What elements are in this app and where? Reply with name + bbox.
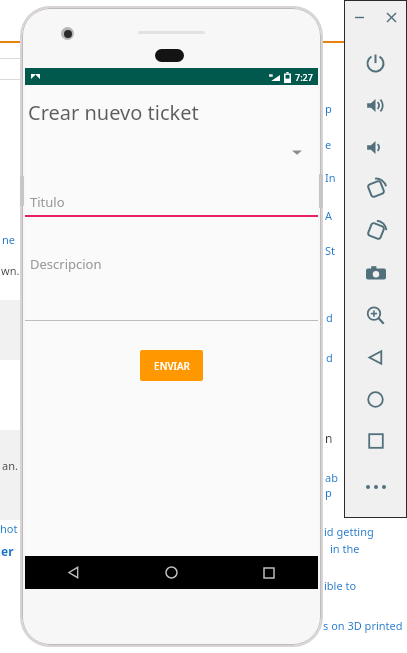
button[interactable]: Volume up (344, 84, 407, 126)
button[interactable]: Rotate left (344, 168, 407, 210)
button[interactable]: Volume down (344, 126, 407, 168)
staticText: d (326, 310, 333, 325)
staticText: an. (2, 458, 18, 473)
staticText: d (326, 350, 333, 365)
staticText: ible to (324, 578, 357, 593)
button[interactable]: Power (344, 42, 407, 84)
staticText: St (325, 243, 336, 258)
staticText: hot (0, 521, 18, 536)
button[interactable]: Open dropdown (25, 137, 318, 167)
staticText: Descripcion (30, 255, 102, 273)
button[interactable]: Back (25, 556, 122, 589)
staticText: e (325, 137, 332, 152)
staticText: er (1, 543, 14, 559)
staticText: In (325, 170, 336, 185)
button[interactable]: Zoom (344, 294, 407, 336)
button[interactable]: Minimize (344, 0, 375, 34)
button[interactable]: ENVIAR (140, 350, 203, 381)
staticText: ab (325, 470, 338, 485)
button[interactable]: Back (344, 336, 407, 378)
button[interactable]: Close (375, 0, 407, 34)
button[interactable]: Titulo (25, 193, 318, 225)
staticText: p (325, 101, 332, 116)
staticText: ENVIAR (154, 359, 190, 373)
button[interactable]: More (344, 466, 407, 508)
staticText: Crear nuevo ticket (28, 99, 199, 126)
staticText: wn. (1, 263, 20, 278)
staticText: id getting (324, 524, 374, 539)
staticText: n (325, 430, 333, 446)
staticText: Titulo (30, 193, 65, 211)
staticText: 7:27 (295, 71, 313, 83)
button[interactable]: Home (122, 556, 220, 589)
button[interactable]: Overview (344, 420, 407, 462)
staticText: s on 3D printed (323, 618, 403, 633)
button[interactable]: Rotate right (344, 210, 407, 252)
button[interactable]: Take screenshot (344, 252, 407, 294)
button[interactable]: Home (344, 378, 407, 420)
other: Open dropdown (292, 147, 302, 157)
staticText: A (325, 208, 333, 223)
button[interactable]: Recent apps (220, 556, 318, 589)
staticText: in the (330, 541, 360, 556)
staticText: ne (2, 232, 16, 247)
button[interactable]: Descripcion (25, 255, 318, 327)
staticText: p (325, 485, 332, 500)
